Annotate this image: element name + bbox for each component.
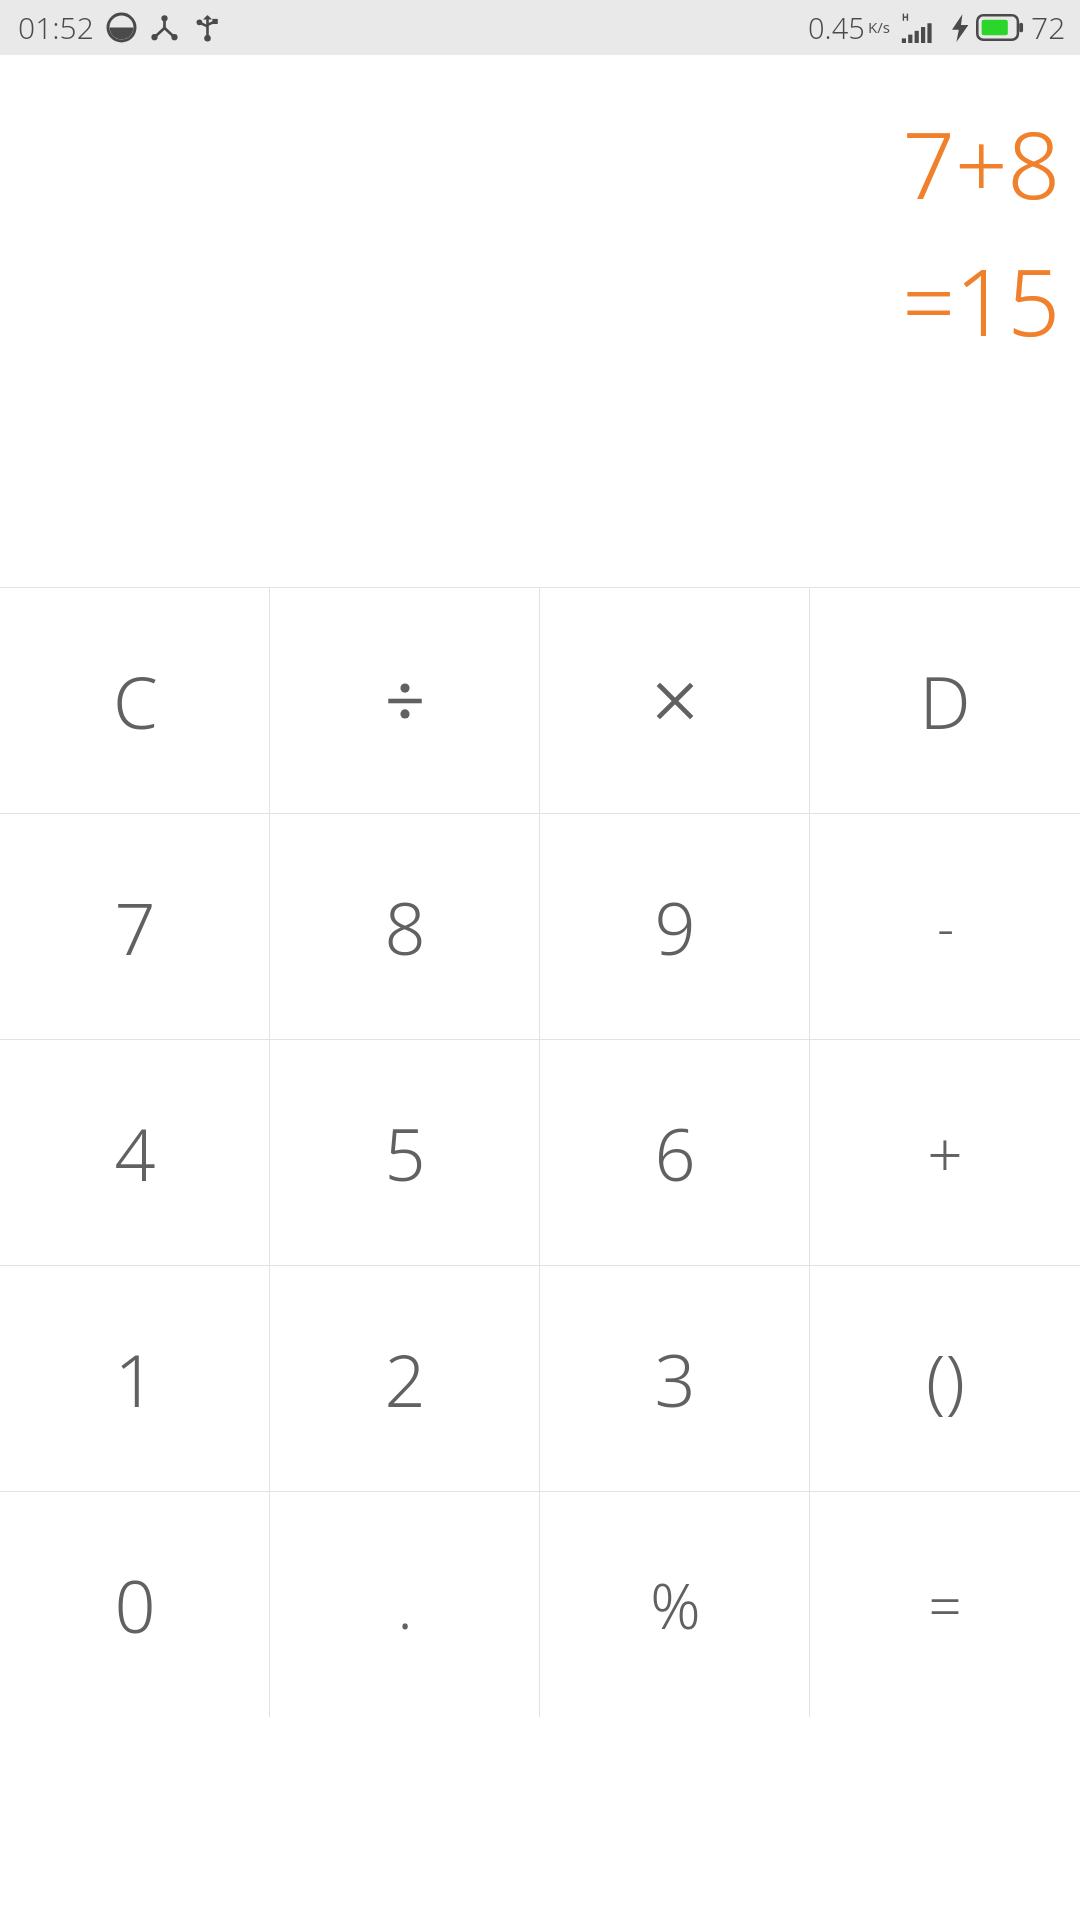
staticText: 0.45 (808, 8, 865, 47)
staticText: - (937, 891, 954, 962)
button[interactable]: + (810, 1040, 1080, 1265)
button[interactable]: 4 (0, 1040, 270, 1265)
staticText: 7+8 (902, 101, 1060, 226)
staticText: . (397, 1563, 413, 1647)
button[interactable]: 1 (0, 1266, 270, 1491)
button[interactable]: 2 (270, 1266, 540, 1491)
button[interactable]: - (810, 814, 1080, 1039)
staticText: K/s (868, 17, 891, 37)
staticText: 5 (384, 1104, 426, 1202)
button[interactable]: . (270, 1492, 540, 1717)
button[interactable]: Divide (270, 588, 540, 813)
staticText: 72 (1031, 7, 1066, 48)
staticText: 4 (114, 1104, 156, 1202)
button[interactable]: = (810, 1492, 1080, 1717)
button[interactable]: 6 (540, 1040, 810, 1265)
staticText: 6 (654, 1104, 696, 1202)
button[interactable]: Multiply (540, 588, 810, 813)
button[interactable]: 5 (270, 1040, 540, 1265)
staticText: = (928, 1565, 962, 1644)
button[interactable]: C (0, 588, 270, 813)
staticText: 8 (384, 878, 426, 976)
staticText: 0 (114, 1556, 156, 1654)
staticText: 2 (384, 1330, 426, 1428)
staticText: % (650, 1563, 701, 1647)
button[interactable]: () (810, 1266, 1080, 1491)
staticText: 01:52 (18, 7, 94, 48)
staticText: () (926, 1331, 965, 1426)
staticText: C (113, 652, 158, 750)
staticText: + (927, 1111, 963, 1195)
staticText: 9 (654, 878, 696, 976)
staticText: 7 (114, 878, 156, 976)
button[interactable]: 7 (0, 814, 270, 1039)
staticText: D (919, 652, 971, 750)
staticText: =15 (902, 238, 1060, 363)
staticText: 3 (654, 1330, 696, 1428)
button[interactable]: 3 (540, 1266, 810, 1491)
button[interactable]: 0 (0, 1492, 270, 1717)
button[interactable]: D (810, 588, 1080, 813)
button[interactable]: 8 (270, 814, 540, 1039)
button[interactable]: % (540, 1492, 810, 1717)
button[interactable]: 9 (540, 814, 810, 1039)
staticText: 1 (114, 1330, 156, 1428)
